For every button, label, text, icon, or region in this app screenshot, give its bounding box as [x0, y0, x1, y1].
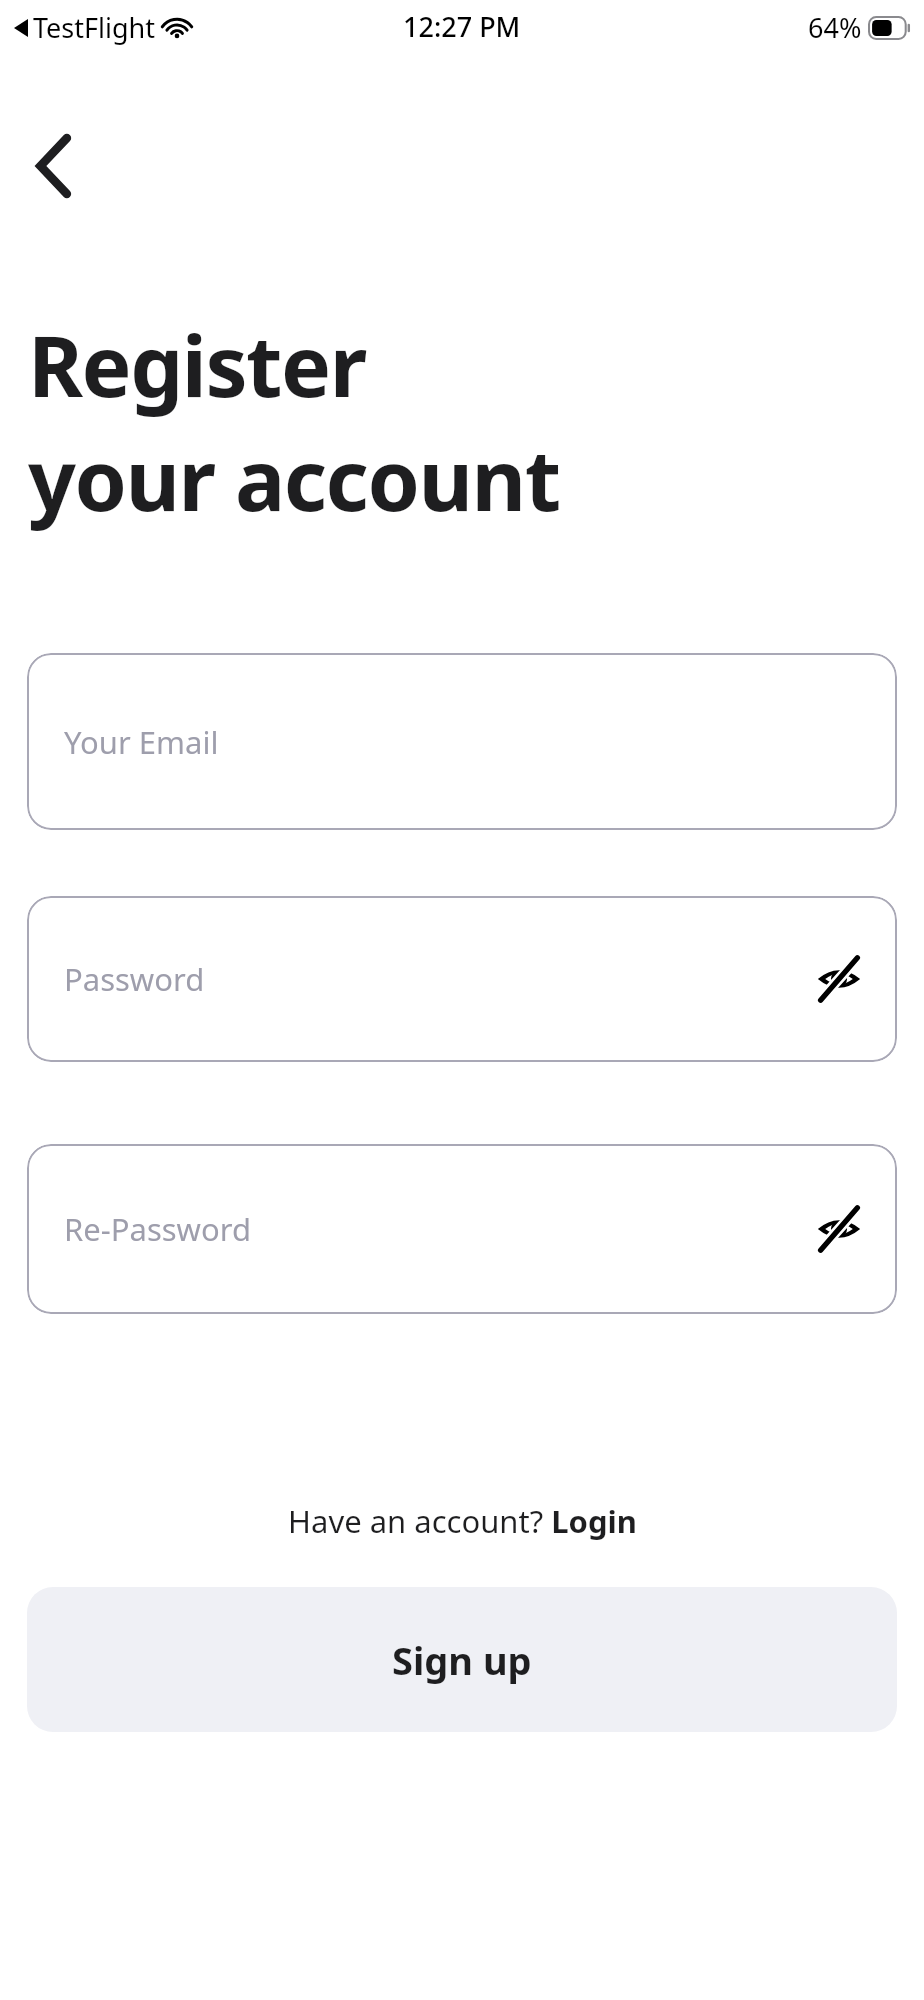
button[interactable]: Toggle password visibility: [803, 1193, 875, 1265]
staticText: Sign up: [392, 1634, 532, 1686]
button[interactable]: Toggle password visibility: [803, 943, 875, 1015]
staticText: your account: [28, 421, 560, 535]
button[interactable]: Password: [27, 896, 897, 1062]
button[interactable]: Your Email: [27, 653, 897, 830]
button[interactable]: Sign up: [27, 1587, 897, 1732]
button[interactable]: Have an account? Login: [0, 1500, 924, 1542]
staticText: 64%: [808, 9, 862, 46]
staticText: TestFlight: [33, 9, 156, 46]
staticText: Your Email: [64, 721, 219, 763]
staticText: 12:27 PM: [403, 8, 521, 45]
button[interactable]: Re-Password: [27, 1144, 897, 1314]
button[interactable]: Back: [18, 130, 90, 202]
staticText: Have an account? Login: [288, 1500, 637, 1542]
staticText: Password: [64, 958, 205, 1000]
staticText: Re-Password: [64, 1208, 251, 1250]
staticText: Register: [28, 307, 366, 421]
